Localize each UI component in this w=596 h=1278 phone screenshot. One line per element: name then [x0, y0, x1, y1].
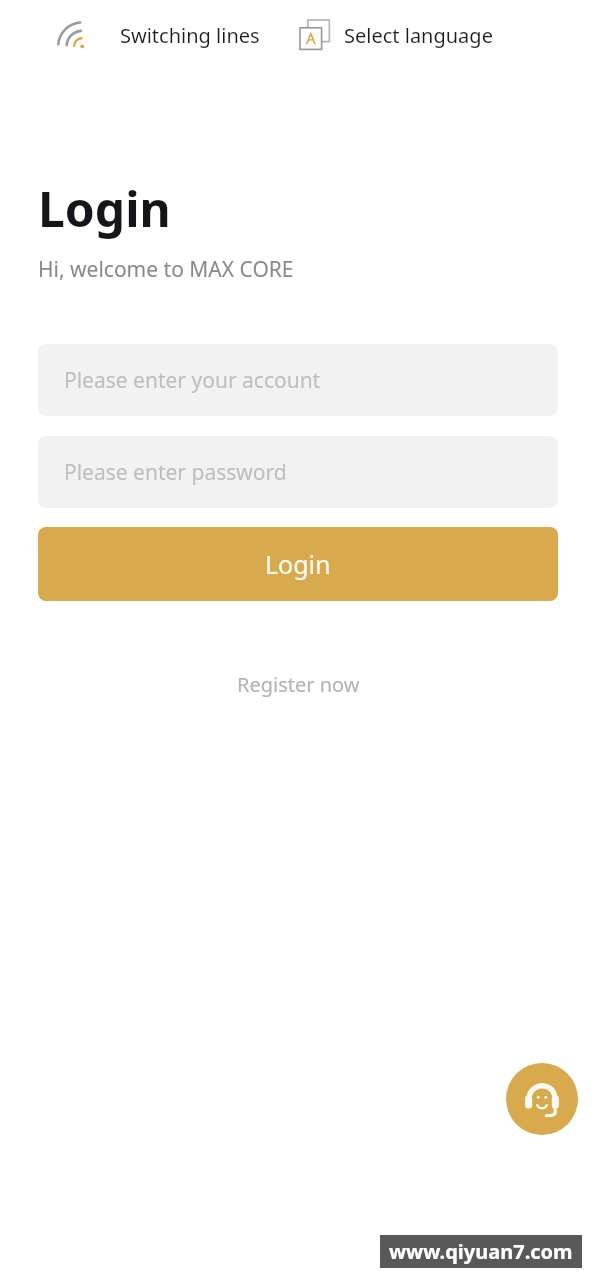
staticText: Login [265, 547, 331, 581]
button[interactable]: Select language [294, 14, 499, 56]
staticText: Switching lines [120, 22, 260, 49]
staticText: Please enter your account [64, 366, 321, 395]
button[interactable]: Please enter your account [38, 344, 558, 416]
staticText: Register now [237, 671, 360, 698]
button[interactable]: Register now [221, 663, 376, 706]
button[interactable]: Switching lines [72, 14, 266, 56]
button[interactable]: Login [38, 527, 558, 601]
staticText: Hi, welcome to MAX CORE [38, 255, 294, 284]
staticText: Select language [344, 22, 493, 49]
button[interactable]: Please enter password [38, 436, 558, 508]
button[interactable]: Customer support [506, 1063, 578, 1135]
staticText: Login [38, 176, 171, 241]
staticText: Please enter password [64, 458, 287, 487]
staticText: www.qiyuan7.com [389, 1238, 573, 1265]
